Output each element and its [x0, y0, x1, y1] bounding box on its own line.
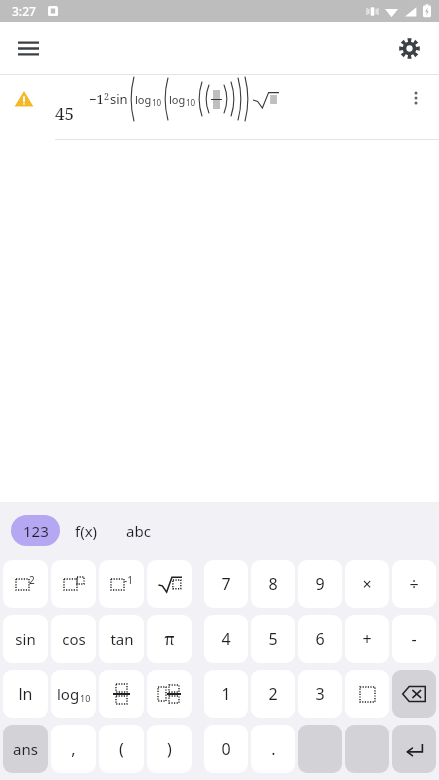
button[interactable]: Key: [345, 725, 389, 773]
staticText: ln: [18, 683, 33, 705]
button[interactable]: Key: [298, 725, 342, 773]
staticText: 2: [104, 90, 110, 102]
staticText: ans: [13, 739, 38, 759]
button[interactable]: 1: [204, 670, 248, 718]
button[interactable]: Warning: [12, 87, 36, 111]
staticText: ): [167, 738, 172, 760]
staticText: ÷: [409, 573, 419, 595]
staticText: −1: [89, 90, 104, 108]
staticText: -1: [124, 573, 133, 587]
button[interactable]: Square: [3, 560, 48, 608]
staticText: π: [164, 628, 175, 650]
button[interactable]: Inverse: [99, 560, 144, 608]
staticText: abc: [126, 521, 151, 541]
button[interactable]: abc: [112, 515, 164, 546]
button[interactable]: Placeholder: [345, 670, 389, 718]
button[interactable]: Square root: [147, 560, 192, 608]
staticText: 8: [268, 573, 278, 595]
staticText: 10: [80, 692, 91, 704]
staticText: ×: [362, 573, 372, 595]
button[interactable]: π: [147, 615, 192, 663]
staticText: log: [57, 684, 80, 704]
button[interactable]: ans: [3, 725, 48, 773]
button[interactable]: ,: [51, 725, 96, 773]
staticText: 2: [268, 683, 278, 705]
button[interactable]: 5: [251, 615, 295, 663]
button[interactable]: ×: [345, 560, 389, 608]
button[interactable]: sin: [3, 615, 48, 663]
button[interactable]: 3: [298, 670, 342, 718]
button[interactable]: 45: [55, 77, 439, 135]
staticText: cos: [62, 629, 86, 649]
button[interactable]: cos: [51, 615, 96, 663]
staticText: tan: [110, 629, 134, 649]
staticText: log: [135, 92, 152, 107]
button[interactable]: Mixed fraction: [147, 670, 192, 718]
button[interactable]: Log base 10: [51, 670, 96, 718]
staticText: .: [271, 738, 276, 760]
button[interactable]: ÷: [392, 560, 436, 608]
button[interactable]: 2: [251, 670, 295, 718]
button[interactable]: More options: [397, 79, 435, 117]
button[interactable]: 7: [204, 560, 248, 608]
button[interactable]: +: [345, 615, 389, 663]
staticText: 4: [221, 628, 231, 650]
staticText: 10: [186, 97, 196, 108]
staticText: ,: [71, 738, 76, 760]
staticText: log: [169, 92, 186, 107]
staticText: 1: [221, 683, 231, 705]
button[interactable]: 8: [251, 560, 295, 608]
staticText: f(x): [75, 521, 98, 541]
button[interactable]: tan: [99, 615, 144, 663]
button[interactable]: Menu: [6, 26, 50, 70]
staticText: 7: [221, 573, 231, 595]
staticText: 9: [315, 573, 325, 595]
button[interactable]: (: [99, 725, 144, 773]
staticText: (: [119, 738, 124, 760]
button[interactable]: -: [392, 615, 436, 663]
button[interactable]: f(x): [60, 515, 112, 546]
button[interactable]: .: [251, 725, 295, 773]
staticText: 2: [29, 573, 35, 587]
staticText: 3: [315, 683, 325, 705]
staticText: 5: [268, 628, 278, 650]
button[interactable]: ln: [3, 670, 48, 718]
staticText: 10: [152, 97, 162, 108]
button[interactable]: Power: [51, 560, 96, 608]
button[interactable]: 9: [298, 560, 342, 608]
staticText: 123: [23, 521, 49, 541]
staticText: 0: [221, 738, 231, 760]
staticText: sin: [15, 629, 36, 649]
button[interactable]: Backspace: [392, 670, 436, 718]
staticText: +: [362, 628, 372, 650]
button[interactable]: Enter: [392, 725, 436, 773]
staticText: 3:27: [12, 3, 36, 19]
staticText: sin: [110, 90, 128, 108]
staticText: -: [411, 628, 417, 650]
button[interactable]: ): [147, 725, 192, 773]
button[interactable]: 4: [204, 615, 248, 663]
staticText: 6: [315, 628, 325, 650]
button[interactable]: 0: [204, 725, 248, 773]
button[interactable]: Fraction: [99, 670, 144, 718]
button[interactable]: 6: [298, 615, 342, 663]
staticText: 45: [55, 102, 75, 125]
button[interactable]: Settings: [387, 26, 431, 70]
button[interactable]: 123: [11, 515, 60, 546]
